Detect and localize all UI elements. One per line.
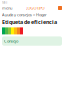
staticText: menu — [2, 5, 12, 11]
staticText: Etiqueta de eficiencia — [2, 18, 57, 25]
staticText: Ayuda y consejos > Hogar — [2, 12, 47, 17]
staticText: LOGOTIPO — [25, 5, 44, 11]
staticText: tabs — [2, 1, 7, 4]
staticText: Consejo — [4, 38, 18, 44]
